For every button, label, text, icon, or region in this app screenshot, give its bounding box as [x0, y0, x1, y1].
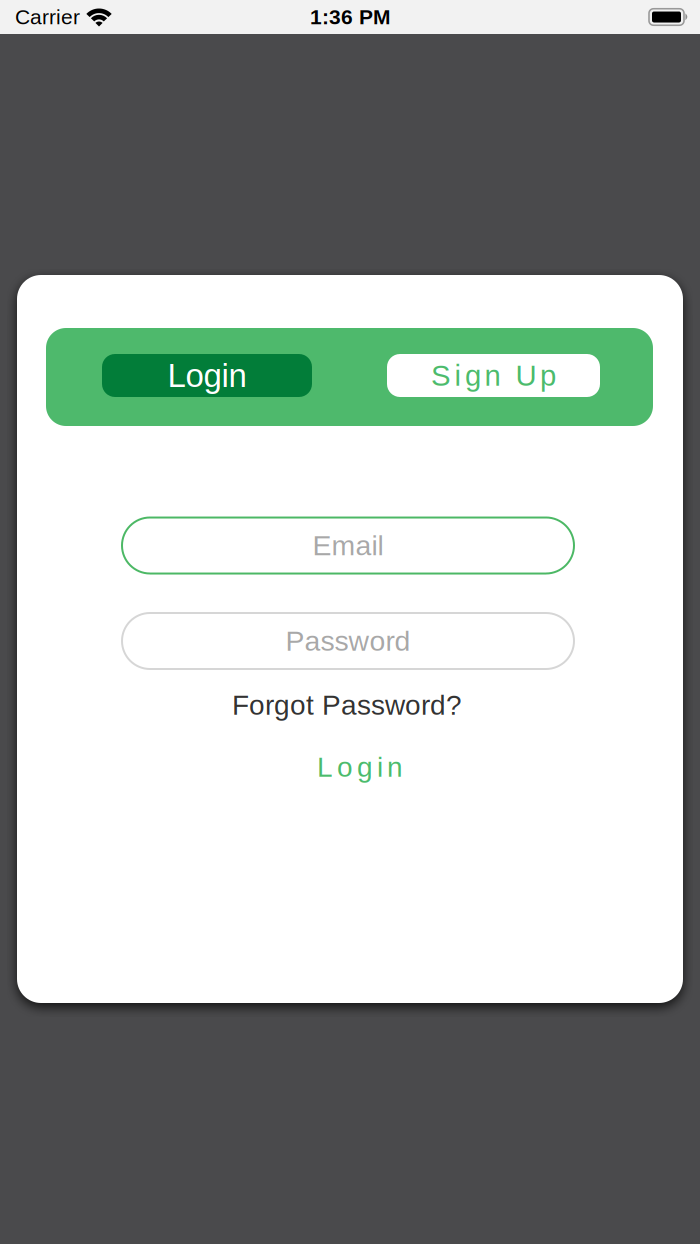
staticText: Password [285, 625, 410, 657]
staticText: Login [167, 357, 246, 394]
button[interactable]: Forgot Password? [232, 689, 462, 721]
button[interactable]: Login [102, 354, 312, 397]
staticText: Login [317, 751, 403, 783]
button[interactable]: Sign Up [387, 354, 600, 397]
staticText: Email [312, 530, 383, 561]
staticText: Carrier [15, 5, 80, 29]
staticText: 1:36 PM [310, 5, 390, 29]
button[interactable]: Login [317, 751, 403, 783]
staticText: Forgot Password? [232, 689, 462, 721]
button[interactable]: Email [122, 517, 574, 573]
button[interactable]: Password [122, 613, 574, 669]
staticText: Sign Up [431, 359, 556, 392]
